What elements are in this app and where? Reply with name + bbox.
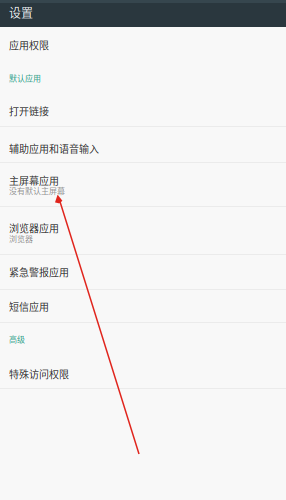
button[interactable]: 主屏幕应用 [0,163,286,206]
staticText: 短信应用 [9,299,49,314]
staticText: 打开链接 [9,104,49,118]
button[interactable]: 紧急警报应用 [0,255,286,289]
staticText: 高级 [9,333,25,345]
button[interactable]: 短信应用 [0,290,286,322]
button[interactable]: 应用权限 [0,28,286,62]
staticText: 没有默认主屏幕 [9,185,65,196]
button[interactable]: 特殊访问权限 [0,356,286,388]
button[interactable]: 打开链接 [0,94,286,126]
staticText: 默认应用 [9,72,41,84]
staticText: 浏览器应用 [9,221,59,235]
button[interactable]: 浏览器应用 [0,207,286,254]
staticText: 紧急警报应用 [9,265,69,279]
staticText: 应用权限 [9,38,49,52]
staticText: 特殊访问权限 [9,367,69,381]
staticText: 主屏幕应用 [9,173,59,188]
button[interactable]: 辅助应用和语音输入 [0,127,286,162]
staticText: 设置 [9,4,33,21]
staticText: 辅助应用和语音输入 [9,141,99,156]
staticText: 浏览器 [9,233,33,244]
